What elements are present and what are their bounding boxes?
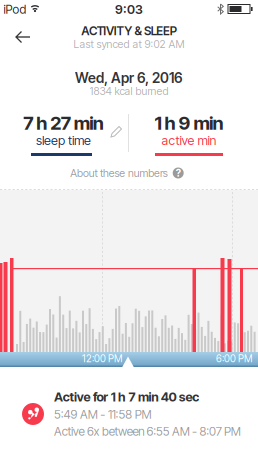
staticText: ACTIVITY & SLEEP bbox=[81, 24, 177, 38]
staticText: 5:49 AM - 11:58 PM bbox=[54, 407, 152, 422]
button[interactable]: Active for 1 h 7 min 40 sec bbox=[0, 368, 258, 460]
button[interactable]: Edit sleep time bbox=[109, 125, 122, 138]
staticText: 1834 kcal burned bbox=[89, 84, 168, 97]
staticText: 9:03 bbox=[115, 2, 143, 17]
staticText: Wed, Apr 6, 2016 bbox=[75, 69, 183, 86]
staticText: 12:00 PM bbox=[82, 352, 122, 365]
button[interactable]: About these numbers bbox=[70, 166, 184, 179]
staticText: Active for 1 h 7 min 40 sec bbox=[54, 389, 199, 405]
staticText: 7 h 27 min bbox=[23, 112, 104, 134]
staticText: Last synced at 9:02 AM bbox=[73, 37, 184, 50]
staticText: active min bbox=[161, 133, 216, 148]
button[interactable]: Back bbox=[8, 22, 38, 52]
staticText: 6:00 PM bbox=[216, 352, 252, 365]
staticText: Active 6x between 6:55 AM - 8:07 PM bbox=[54, 424, 241, 439]
staticText: iPod bbox=[3, 2, 26, 17]
staticText: About these numbers bbox=[70, 166, 168, 179]
staticText: sleep time bbox=[36, 133, 91, 148]
staticText: ? bbox=[176, 167, 181, 179]
staticText: 1 h 9 min bbox=[154, 112, 223, 134]
